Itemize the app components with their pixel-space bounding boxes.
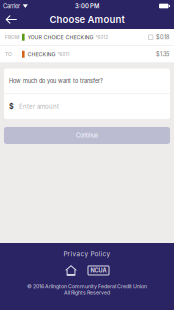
staticText: Carrier — [3, 2, 20, 10]
staticText: How much do you want to transfer? — [9, 78, 103, 84]
staticText: All Rights Reserved — [64, 289, 110, 296]
button[interactable]: Privacy Policy — [53, 248, 120, 260]
staticText: NCUA — [90, 267, 106, 274]
button[interactable]: TO — [0, 46, 174, 62]
staticText: CHECKING — [28, 51, 56, 57]
staticText: $0.18 — [156, 34, 169, 41]
staticText: © 2016 Arlington Community Federal Credi… — [27, 283, 147, 289]
button[interactable]: FROM — [0, 29, 174, 45]
staticText: Continue — [76, 132, 98, 139]
button[interactable]: Back — [0, 11, 23, 28]
staticText: $1.35 — [156, 51, 169, 58]
staticText: 3:00 PM — [75, 2, 99, 10]
staticText: FROM — [5, 34, 19, 40]
staticText: YOUR CHOICE CHECKING — [28, 34, 94, 40]
button[interactable]: Continue — [0, 127, 174, 144]
staticText: *6011 — [58, 51, 70, 57]
staticText: *6012 — [96, 34, 109, 40]
staticText: Privacy Policy — [63, 250, 110, 258]
staticText: $ — [9, 102, 14, 111]
staticText: Choose Amount — [49, 14, 124, 25]
staticText: TO — [5, 51, 12, 57]
staticText: Enter amount — [19, 103, 59, 110]
